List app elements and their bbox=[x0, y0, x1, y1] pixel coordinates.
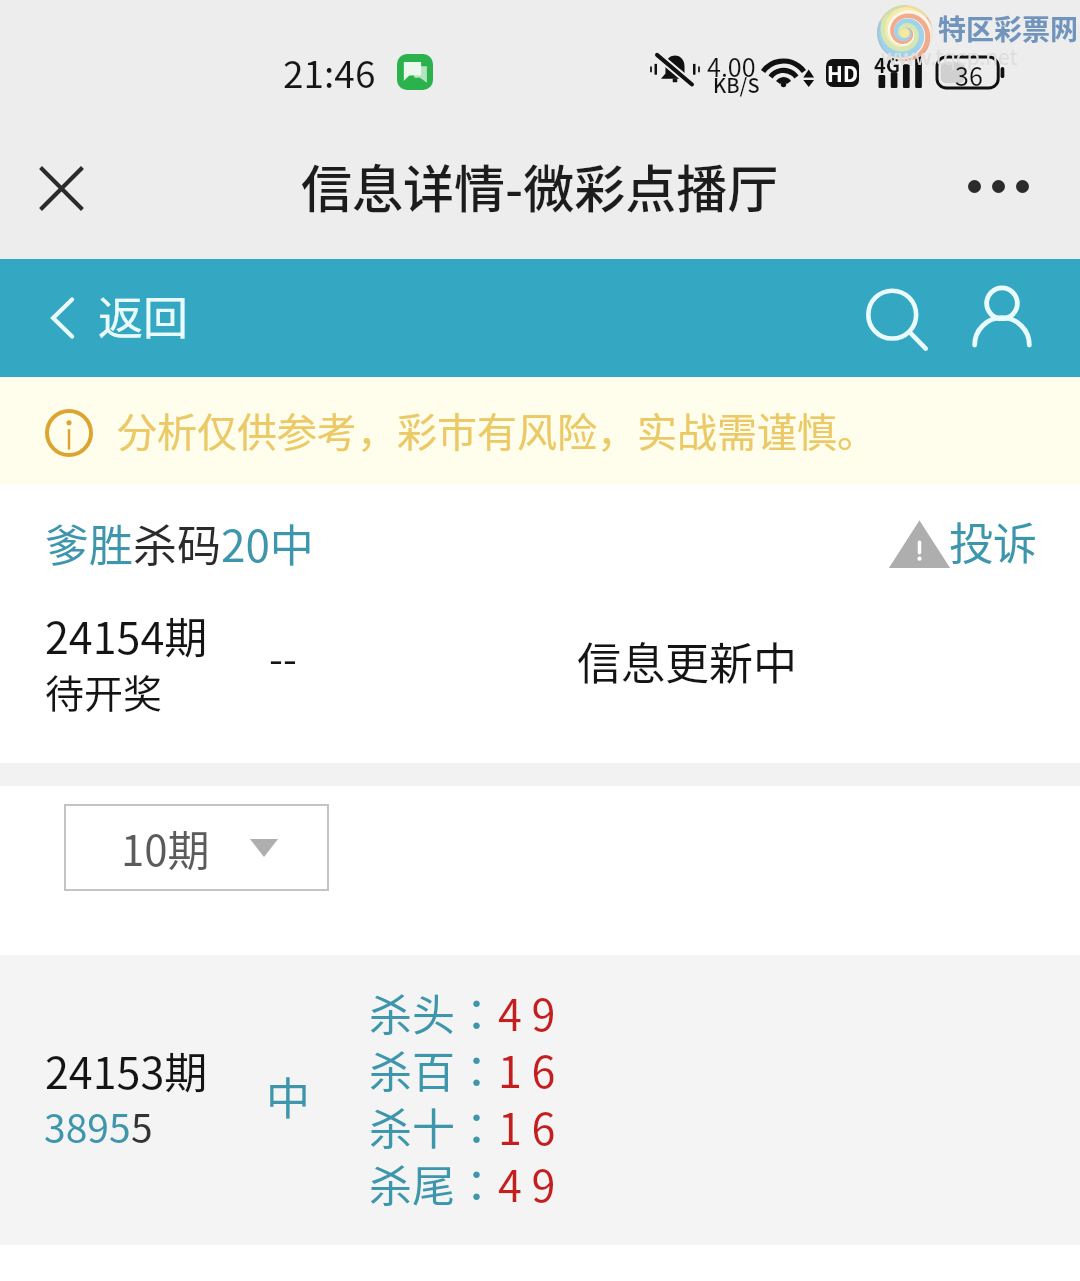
button[interactable]: Search bbox=[850, 275, 950, 375]
staticText: 杀尾： bbox=[369, 1152, 498, 1209]
staticText: 20中 bbox=[221, 511, 314, 575]
staticText: 待开奖 bbox=[45, 663, 163, 719]
staticText: 杀头： bbox=[369, 981, 498, 1038]
staticText: 分析仅供参考，彩市有风险，实战需谨慎。 bbox=[117, 401, 877, 459]
button[interactable]: 投诉 bbox=[880, 519, 1042, 585]
staticText: KB/S bbox=[713, 70, 760, 99]
staticText: 信息详情-微彩点播厅 bbox=[301, 149, 779, 223]
staticText: 4G bbox=[874, 50, 901, 79]
button[interactable]: 返回 bbox=[50, 285, 189, 350]
staticText: -- bbox=[269, 628, 297, 686]
staticText: 21:46 bbox=[283, 45, 376, 99]
staticText: 24154期 bbox=[45, 604, 208, 666]
staticText: HD bbox=[827, 59, 858, 86]
staticText: 3895 bbox=[44, 1098, 131, 1154]
staticText: 杀码 bbox=[133, 511, 221, 575]
staticText: 24153期 bbox=[45, 1039, 208, 1101]
button[interactable]: 24153期 bbox=[0, 955, 1080, 1245]
staticText: 36 bbox=[955, 57, 983, 88]
staticText: 返回 bbox=[98, 283, 189, 348]
staticText: 杀百： bbox=[369, 1038, 498, 1095]
staticText: 1 6 bbox=[498, 1038, 556, 1095]
staticText: 中 bbox=[266, 1064, 310, 1128]
staticText: 4 9 bbox=[498, 1152, 556, 1209]
staticText: 信息更新中 bbox=[577, 629, 797, 693]
staticText: 4 9 bbox=[498, 981, 556, 1038]
staticText: 投诉 bbox=[949, 509, 1037, 573]
button[interactable]: 10期 bbox=[64, 804, 329, 891]
button[interactable]: Account bbox=[952, 273, 1052, 373]
staticText: www.tqcp.net bbox=[881, 41, 1018, 71]
staticText: 5 bbox=[131, 1098, 153, 1154]
staticText: 10期 bbox=[121, 817, 210, 878]
button[interactable]: Close bbox=[21, 148, 101, 228]
staticText: 4.00 bbox=[707, 48, 756, 84]
button[interactable]: More options bbox=[958, 146, 1038, 226]
staticText: 爹胜 bbox=[45, 511, 133, 575]
staticText: 1 6 bbox=[498, 1095, 556, 1152]
staticText: 特区彩票网 bbox=[938, 8, 1079, 49]
staticText: 杀十： bbox=[369, 1095, 498, 1152]
